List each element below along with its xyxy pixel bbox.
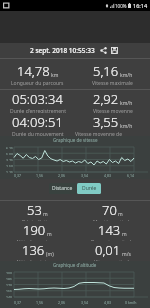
button[interactable]: Distance [49,183,76,194]
staticText: 3,54 [81,300,88,305]
staticText: 0,01 [95,241,121,259]
staticText: 14,78 [17,62,50,80]
staticText: 53 [27,201,42,219]
staticText: km/h [120,72,133,79]
button[interactable]: 190 [0,221,75,241]
staticText: Durée du mouvement [12,131,64,136]
staticText: Durée d'enregistrement [10,108,66,113]
button[interactable]: 14,78 [0,59,75,89]
staticText: m [118,211,123,218]
staticText: 143 [98,221,121,239]
staticText: 200 [6,271,13,274]
staticText: 0,37 [14,300,21,305]
staticText: m [43,211,48,218]
staticText: 2 sept. 2018 10:55:33 [30,46,95,55]
staticText: Graphique de vitesse [53,137,98,143]
staticText: 3,75 [6,158,13,161]
button[interactable]: Durée [77,183,101,194]
staticText: Altitude minimum [16,259,59,261]
staticText: 140 [6,295,13,298]
staticText: 136 [22,241,45,259]
staticText: 05:03:34 [12,90,63,108]
staticText: Vitesse moyenne de déplacement [75,131,150,136]
staticText: Dénivellation [22,219,53,221]
staticText: Descente verticale [91,239,134,241]
staticText: km/h [120,100,133,107]
staticText: 5,16 [93,62,119,80]
staticText: Durée [82,185,97,192]
staticText: Longueur du parcours [11,80,64,87]
staticText: Vitesse verticale [94,259,132,261]
staticText: km/h [120,123,133,130]
staticText: 100% [115,3,127,9]
staticText: 1,56 [36,173,43,178]
button[interactable]: 70 [75,201,150,221]
button[interactable]: 136 [0,241,75,261]
staticText: 2,50 [6,164,13,167]
staticText: 0,37 [14,173,21,178]
staticText: 3,55 [93,113,119,131]
staticText: m/s [122,251,131,258]
staticText: 16:14 [133,2,148,9]
button[interactable]: 04:09:51 [0,113,75,136]
staticText: 190 [23,221,46,239]
staticText: m [122,231,127,238]
staticText: Altitude maximum [16,239,60,241]
button[interactable]: 143 [75,221,150,241]
staticText: 1,56 [36,300,43,305]
staticText: 2,06 [58,300,65,305]
staticText: 170 [6,283,13,286]
staticText: 70 [102,201,117,219]
staticText: 6,14 [127,173,134,178]
staticText: m [47,231,52,238]
staticText: 4,83 [104,173,111,178]
staticText: 4,83 [104,300,111,305]
staticText: 0 km/h [125,300,137,305]
staticText: 155 [6,289,13,292]
button[interactable]: 05:03:34 [0,90,75,113]
staticText: 2,06 [58,173,65,178]
button[interactable]: 5,16 [75,59,150,89]
button[interactable]: 3,55 [75,113,150,136]
staticText: 3,54 [81,173,88,178]
button[interactable]: 53 [0,201,75,221]
button[interactable]: 0,01 [75,241,150,261]
staticText: 04:09:51 [12,113,63,131]
staticText: Vitesse moyenne [93,108,133,113]
staticText: 5,00 [6,152,13,155]
staticText: (m) [46,251,54,258]
staticText: Distance [52,185,73,192]
button[interactable]: Partager [98,45,109,56]
staticText: 2,92 [93,90,119,108]
staticText: 6,25 [6,146,13,149]
staticText: 1,25 [6,170,13,173]
staticText: Montée verticale [93,219,133,221]
button[interactable]: Enregistrer [109,45,120,56]
staticText: km [51,72,59,79]
staticText: Vitesse maximale [92,80,133,87]
staticText: 185 [6,277,13,280]
staticText: Graphique d'altitude [53,262,97,268]
button[interactable]: 2,92 [75,90,150,113]
